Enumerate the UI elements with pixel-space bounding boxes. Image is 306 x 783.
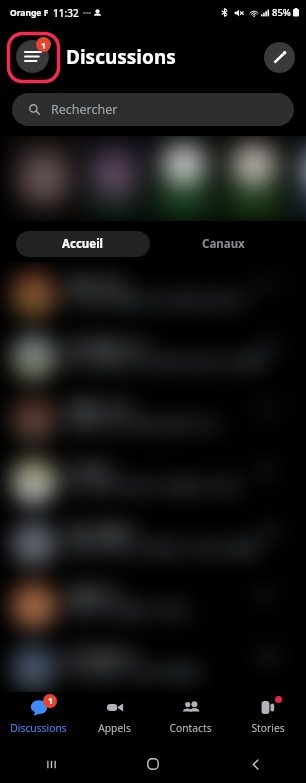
- staticText: Appels: [98, 721, 131, 735]
- staticText: Canaux: [202, 236, 245, 252]
- staticText: 85%: [272, 6, 291, 19]
- button[interactable]: Recent apps: [0, 745, 102, 783]
- staticText: Discussions: [66, 44, 176, 70]
- button[interactable]: Canaux: [156, 231, 290, 257]
- button[interactable]: Rechercher: [12, 93, 294, 126]
- staticText: 1: [48, 695, 53, 707]
- button[interactable]: Contacts: [152, 693, 229, 745]
- staticText: Accueil: [62, 236, 104, 252]
- button[interactable]: New message: [264, 42, 295, 73]
- staticText: Contacts: [169, 721, 212, 735]
- staticText: Rechercher: [51, 101, 118, 118]
- staticText: 1: [41, 39, 47, 51]
- staticText: Orange F: [10, 7, 49, 19]
- button[interactable]: Home: [102, 745, 204, 783]
- staticText: Discussions: [10, 721, 67, 735]
- button[interactable]: Accueil: [16, 231, 150, 257]
- button[interactable]: Menu: [16, 40, 49, 73]
- staticText: Stories: [251, 721, 285, 735]
- staticText: 11:32: [53, 6, 79, 20]
- button[interactable]: 1: [0, 693, 76, 745]
- button[interactable]: Appels: [76, 693, 152, 745]
- button[interactable]: Stories: [229, 693, 306, 745]
- button[interactable]: Back: [204, 745, 306, 783]
